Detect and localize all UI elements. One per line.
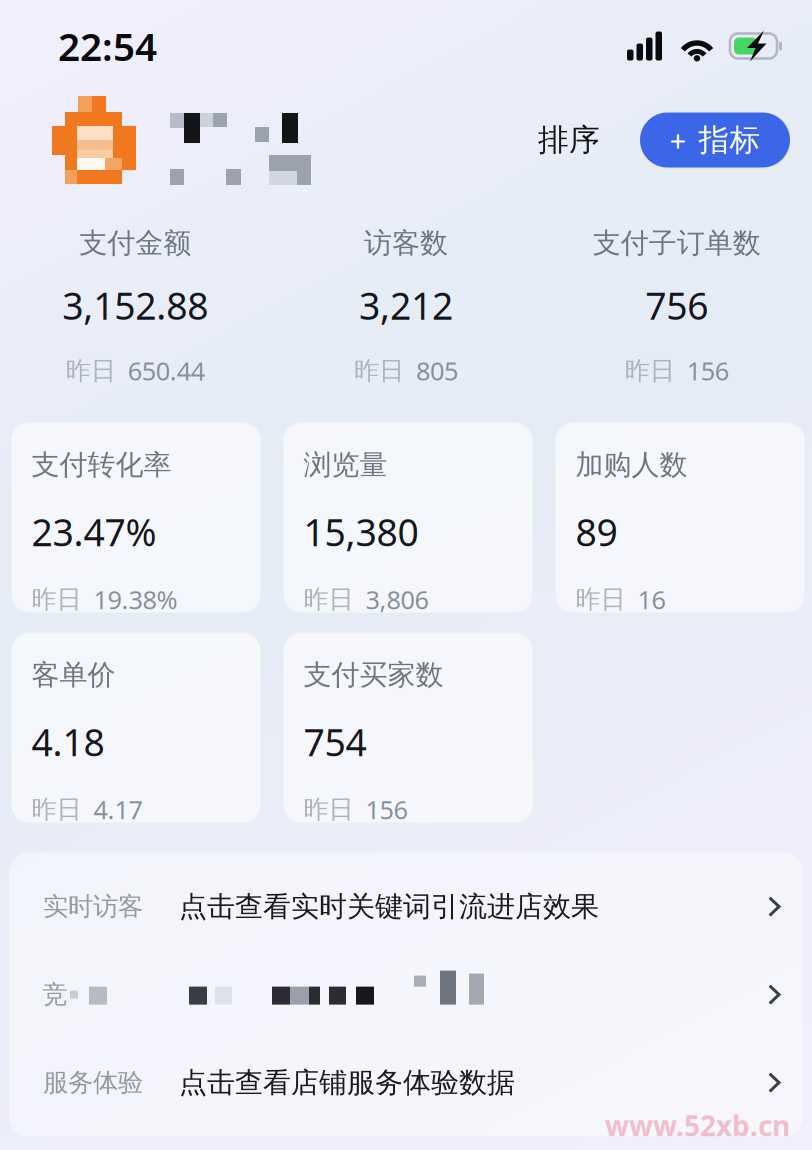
staticText: 排序: [538, 121, 600, 159]
staticText: www.52xb.cn: [605, 1107, 790, 1144]
staticText: 3,152.88: [62, 280, 208, 330]
staticText: 昨日: [625, 355, 675, 386]
staticText: 浏览量: [303, 448, 387, 482]
staticText: 23.47%: [31, 507, 156, 557]
staticText: 650.44: [128, 354, 205, 388]
button[interactable]: 服务体验: [9, 1039, 803, 1127]
staticText: 756: [645, 280, 708, 330]
staticText: 3,212: [359, 280, 453, 330]
button[interactable]: 支付转化率: [11, 423, 260, 613]
staticText: 支付子订单数: [593, 226, 761, 260]
button[interactable]: 实时访客: [9, 863, 803, 951]
staticText: 昨日: [303, 584, 353, 615]
staticText: 访客数: [364, 226, 448, 260]
staticText: 15,380: [303, 507, 418, 557]
button[interactable]: 浏览量: [283, 423, 532, 613]
button[interactable]: 支付买家数: [283, 633, 532, 823]
staticText: 指标: [698, 121, 760, 159]
staticText: 16: [637, 583, 665, 616]
staticText: 754: [303, 717, 366, 767]
staticText: 加购人数: [575, 448, 687, 482]
staticText: 昨日: [31, 794, 81, 825]
button[interactable]: 排序: [528, 110, 610, 170]
staticText: 156: [365, 793, 407, 826]
staticText: 服务体验: [43, 1067, 143, 1098]
staticText: 点击查看实时关键词引流进店效果: [179, 889, 599, 924]
staticText: 805: [416, 354, 458, 388]
staticText: 实时访客: [43, 891, 143, 922]
staticText: 昨日: [66, 355, 116, 386]
staticText: 89: [575, 507, 617, 557]
button[interactable]: 客单价: [11, 633, 260, 823]
staticText: 支付买家数: [303, 658, 443, 692]
staticText: 昨日: [31, 584, 81, 615]
staticText: 19.38%: [93, 583, 177, 616]
staticText: 昨日: [354, 355, 404, 386]
staticText: 支付金额: [79, 226, 191, 260]
staticText: 竞: [42, 979, 67, 1010]
staticText: 22:54: [58, 20, 157, 72]
staticText: 156: [687, 354, 729, 388]
staticText: 4.18: [31, 717, 104, 767]
staticText: 3,806: [365, 583, 428, 616]
staticText: 昨日: [303, 794, 353, 825]
button[interactable]: 加购人数: [555, 423, 804, 613]
staticText: 昨日: [575, 584, 625, 615]
button[interactable]: 竞: [9, 951, 803, 1039]
staticText: +: [669, 120, 686, 159]
staticText: 客单价: [31, 658, 115, 692]
staticText: 4.17: [93, 793, 142, 826]
button[interactable]: +: [640, 112, 790, 167]
staticText: 点击查看店铺服务体验数据: [179, 1065, 515, 1100]
staticText: 支付转化率: [31, 448, 171, 482]
